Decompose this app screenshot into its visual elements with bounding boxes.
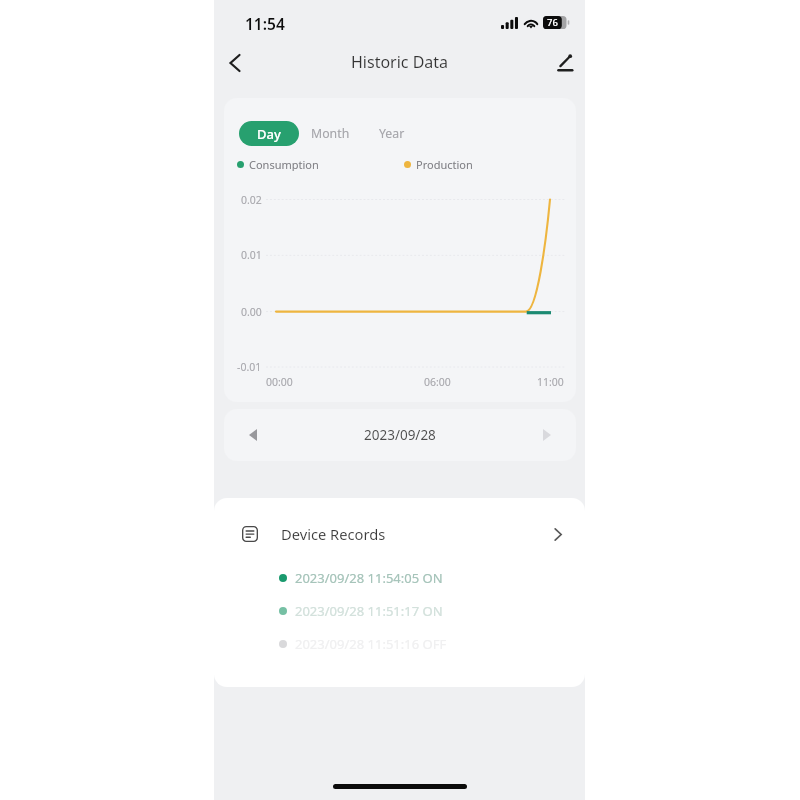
staticText: Consumption [249, 157, 319, 171]
button[interactable]: Day [239, 121, 299, 146]
staticText: Device Records [281, 524, 386, 544]
staticText: 76 [547, 16, 558, 29]
staticText: 2023/09/28 11:54:05 ON [295, 569, 443, 587]
staticText: 00:00 [266, 375, 293, 389]
staticText: 2023/09/28 11:51:16 OFF [295, 635, 447, 653]
staticText: Historic Data [351, 51, 449, 73]
staticText: -0.01 [237, 360, 262, 374]
staticText: 11:54 [245, 13, 285, 34]
button[interactable]: 2023/09/28 11:51:17 ON [214, 594, 585, 627]
button[interactable]: Month [301, 121, 359, 146]
staticText: 2023/09/28 11:51:17 ON [295, 602, 443, 620]
staticText: 0.00 [241, 305, 262, 319]
staticText: 0.01 [241, 248, 262, 262]
button[interactable]: 2023/09/28 11:54:05 ON [214, 561, 585, 594]
button[interactable]: Year [368, 121, 416, 146]
button[interactable]: Device Records [214, 498, 585, 570]
staticText: 2023/09/28 [364, 426, 436, 444]
staticText: Year [379, 125, 405, 142]
staticText: Production [416, 157, 473, 171]
button[interactable]: Next day [529, 417, 565, 453]
button[interactable]: Back [215, 43, 255, 83]
button[interactable]: Edit [545, 43, 585, 83]
button[interactable]: 2023/09/28 11:51:16 OFF [214, 627, 585, 660]
staticText: 11:00 [537, 375, 564, 389]
staticText: Month [311, 125, 350, 142]
staticText: 0.02 [241, 193, 262, 207]
staticText: 06:00 [424, 375, 451, 389]
button[interactable]: Previous day [235, 417, 271, 453]
staticText: Day [257, 125, 281, 143]
